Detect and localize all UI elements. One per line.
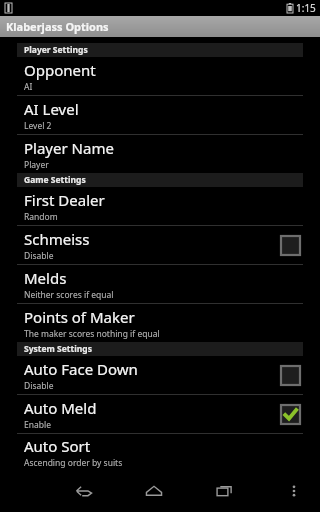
button[interactable]: Auto Sort [0, 434, 320, 470]
button[interactable]: First Dealer [0, 187, 320, 226]
staticText: Player [24, 159, 49, 171]
button[interactable]: Auto Meld [0, 395, 320, 434]
button[interactable]: Melds [0, 265, 320, 304]
button[interactable]: More options [274, 471, 314, 511]
button[interactable]: Checked [281, 405, 300, 424]
staticText: Player Name [24, 138, 114, 158]
staticText: Schmeiss [24, 229, 90, 249]
staticText: Game Settings [24, 174, 86, 186]
button[interactable]: Unchecked [281, 236, 300, 255]
button[interactable]: Home [132, 470, 176, 512]
button[interactable]: Auto Face Down [0, 356, 320, 395]
staticText: The maker scores nothing if equal [24, 328, 160, 340]
button[interactable]: Unchecked [281, 366, 300, 385]
button[interactable]: Opponent [0, 57, 320, 96]
button[interactable]: Back [62, 470, 106, 512]
button[interactable]: Recent apps [203, 470, 247, 512]
staticText: Auto Sort [24, 436, 91, 456]
staticText: Disable [24, 250, 54, 262]
staticText: 1:15 [296, 1, 316, 15]
button[interactable]: Points of Maker [0, 304, 320, 342]
staticText: Points of Maker [24, 307, 135, 327]
staticText: Level 2 [24, 120, 52, 132]
button[interactable]: Schmeiss [0, 226, 320, 265]
staticText: Player Settings [24, 44, 88, 56]
staticText: Klaberjass Options [6, 19, 109, 34]
staticText: Enable [24, 419, 51, 431]
staticText: AI Level [24, 99, 79, 119]
button[interactable]: Player Name [0, 135, 320, 173]
staticText: Opponent [24, 60, 96, 80]
staticText: Ascending order by suits [24, 457, 123, 469]
staticText: Melds [24, 268, 67, 288]
staticText: Auto Meld [24, 398, 97, 418]
staticText: System Settings [24, 343, 92, 355]
staticText: Auto Face Down [24, 359, 138, 379]
staticText: Random [24, 211, 58, 223]
staticText: Neither scores if equal [24, 289, 114, 301]
button[interactable]: AI Level [0, 96, 320, 135]
staticText: AI [24, 81, 33, 93]
staticText: First Dealer [24, 190, 105, 210]
staticText: Disable [24, 380, 54, 392]
